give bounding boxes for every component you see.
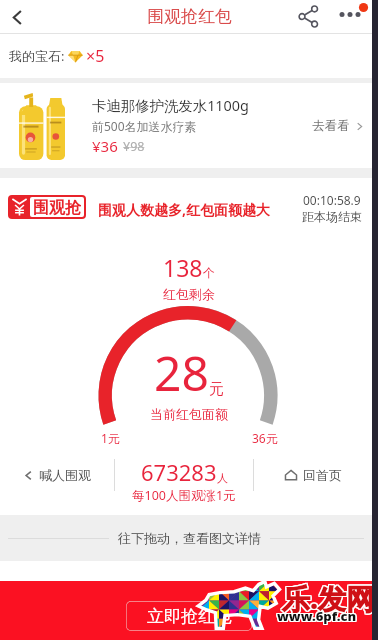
staticText: www.6pf.cn (276, 608, 356, 626)
button[interactable]: 回首页 (254, 459, 372, 491)
staticText: 围观人数越多,红包面额越大 (98, 200, 270, 219)
button[interactable]: 立即抢红包 (126, 601, 252, 631)
button[interactable]: More options (336, 0, 374, 32)
staticText: 乐.发网 (282, 579, 375, 617)
staticText: 28 (154, 340, 209, 405)
staticText: ×5 (86, 45, 105, 67)
staticText: 个 (203, 265, 215, 280)
staticText: 前500名加送水疗素 (92, 118, 197, 134)
staticText: 36元 (252, 430, 278, 446)
staticText: 立即抢红包 (147, 606, 232, 627)
staticText: 围观抢 (33, 198, 81, 216)
button[interactable]: 围观抢 (8, 195, 86, 219)
staticText: 673283 (141, 457, 217, 487)
staticText: www.6pf.cn (278, 608, 358, 626)
staticText: 卡迪那修护洗发水1100g (92, 96, 249, 116)
button[interactable]: 卡迪那修护洗发水1100g (0, 83, 378, 168)
staticText: 人 (217, 471, 228, 485)
staticText: 1元 (101, 430, 120, 446)
staticText: www.6pf.cn (278, 606, 358, 624)
button[interactable]: 673283 (115, 457, 253, 504)
staticText: 乐.发网 (283, 580, 376, 618)
staticText: 00:10:58.9 (303, 192, 361, 208)
staticText: 去看看 (312, 118, 350, 134)
staticText: ¥36 (92, 136, 118, 156)
staticText: 回首页 (303, 467, 342, 483)
button[interactable]: 喊人围观 (0, 459, 114, 491)
staticText: www.6pf.cn (277, 607, 357, 625)
button[interactable]: Share (291, 0, 325, 32)
staticText: 乐.发网 (283, 579, 376, 617)
staticText: ¥98 (123, 138, 145, 155)
staticText: www.6pf.cn (276, 607, 356, 625)
staticText: 乐.发网 (281, 578, 374, 616)
staticText: www.6pf.cn (277, 608, 357, 626)
staticText: 围观抢红包 (147, 6, 232, 27)
staticText: 红包剩余 (163, 286, 215, 302)
staticText: 每100人围观涨1元 (132, 487, 236, 504)
button[interactable]: Back (0, 0, 34, 34)
staticText: 距本场结束 (302, 209, 362, 224)
staticText: 乐.发网 (283, 578, 376, 616)
staticText: 往下拖动，查看图文详情 (118, 530, 261, 546)
staticText: 当前红包面额 (150, 406, 228, 422)
staticText: 乐.发网 (281, 580, 374, 618)
staticText: 138 (163, 252, 203, 283)
staticText: www.6pf.cn (277, 606, 357, 624)
staticText: www.6pf.cn (278, 607, 358, 625)
staticText: 喊人围观 (39, 467, 91, 483)
staticText: 我的宝石: (9, 47, 65, 65)
staticText: 乐.发网 (282, 578, 375, 616)
staticText: www.6pf.cn (276, 606, 356, 624)
staticText: 元 (209, 380, 224, 399)
staticText: 乐.发网 (281, 579, 374, 617)
staticText: 乐.发网 (282, 580, 375, 618)
